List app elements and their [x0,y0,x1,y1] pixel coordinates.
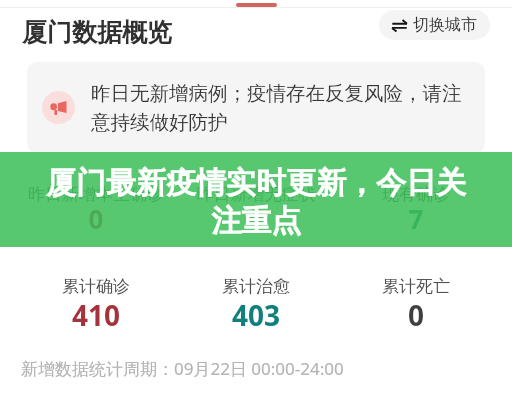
staticText: 昨日新增本土确诊 [16,184,176,205]
button[interactable]: 昨日新增本土确诊 [16,184,176,239]
button[interactable]: 累计确诊 [16,276,176,336]
staticText: 厦门数据概览 [22,17,172,48]
staticText: 0 [176,201,336,236]
staticText: 7 [336,201,496,236]
staticText: 410 [16,296,176,334]
staticText: 昨日无新增病例；疫情存在反复风险，请注意持续做好防护 [91,81,471,135]
staticText: 现有确诊 [336,184,496,205]
button[interactable]: 昨日新增无症状 [176,184,336,239]
button[interactable]: 现有确诊 [336,184,496,239]
staticText: 新增数据统计周期：09月22日 00:00-24:00 [21,357,344,380]
staticText: 累计死亡 [336,276,496,297]
staticText: 累计确诊 [16,276,176,297]
staticText: 0 [336,296,496,334]
staticText: 累计治愈 [176,276,336,297]
staticText: 0 [16,201,176,236]
staticText: 403 [176,296,336,334]
button[interactable]: 昨日无新增病例；疫情存在反复风险，请注意持续做好防护 [27,62,485,153]
staticText: 切换城市 [413,15,477,35]
button[interactable]: 累计治愈 [176,276,336,336]
staticText: 昨日新增无症状 [176,184,336,205]
other: 切换城市 [392,18,407,33]
staticText: 厦门最新疫情实时更新，今日关注重点 [36,164,476,240]
button[interactable]: 累计死亡 [336,276,496,336]
button[interactable]: 切换城市 [379,10,490,40]
